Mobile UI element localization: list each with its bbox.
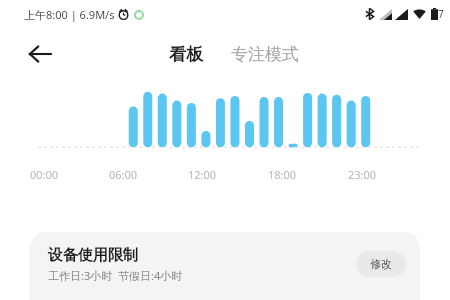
button[interactable]: 看板 [163, 40, 209, 69]
staticText: 12:00 [188, 167, 268, 182]
staticText: 06:00 [109, 167, 188, 182]
staticText: 修改 [370, 257, 392, 271]
staticText: 18:00 [268, 167, 348, 182]
staticText: 设备使用限制 [48, 246, 138, 265]
staticText: 23:00 [348, 167, 428, 182]
staticText: 看板 [169, 44, 203, 65]
button[interactable]: 修改 [356, 251, 406, 277]
button[interactable]: 设备使用限制 [30, 232, 420, 300]
staticText: 上午8:00 | 6.9M/s [24, 7, 115, 22]
staticText: 专注模式 [231, 44, 299, 65]
staticText: 00:00 [30, 167, 109, 182]
button[interactable]: Back [22, 36, 58, 72]
staticText: 7 [438, 7, 444, 21]
staticText: 工作日:3小时 节假日:4小时 [48, 268, 183, 282]
button[interactable]: 专注模式 [225, 40, 305, 69]
